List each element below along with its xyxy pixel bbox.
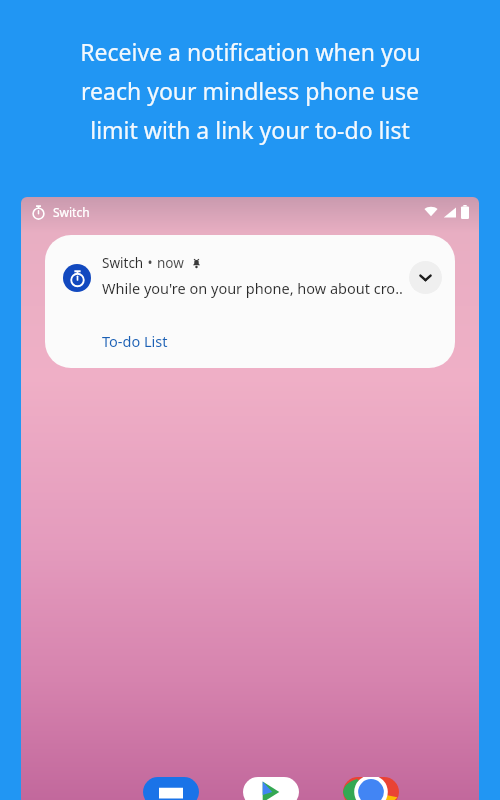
staticText: While you're on your phone, how about cr… [102,278,403,298]
button[interactable]: Play Store [243,777,299,800]
staticText: To-do List [102,331,168,351]
staticText: • [144,254,157,272]
button[interactable]: Messages [143,777,199,800]
staticText: Switch [102,254,144,272]
staticText: reach your mindless phone use [81,75,419,106]
staticText: now [157,254,184,272]
button[interactable]: To-do List [95,327,175,355]
staticText: Receive a notification when you [80,36,421,67]
staticText: limit with a link your to-do list [90,114,410,145]
button[interactable]: Chrome [343,777,399,800]
button[interactable]: Switch [45,235,455,368]
button[interactable]: Expand notification [409,261,442,294]
staticText: Switch [53,204,90,220]
